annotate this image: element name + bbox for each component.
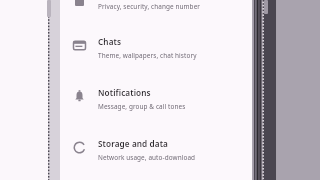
button[interactable]: Chats <box>60 29 252 67</box>
staticText: Theme, wallpapers, chat history <box>98 51 197 60</box>
staticText: Network usage, auto-download <box>98 153 196 162</box>
staticText: Message, group & call tones <box>98 102 186 111</box>
staticText: Notifications <box>98 87 151 98</box>
staticText: Chats <box>98 36 122 47</box>
other: Chats <box>72 38 87 53</box>
staticText: Storage and data <box>98 138 168 149</box>
button[interactable]: Notifications <box>60 80 252 118</box>
button[interactable]: Storage and data <box>60 131 252 169</box>
other: Notifications <box>72 89 87 104</box>
staticText: Privacy, security, change number <box>98 2 201 11</box>
other: Account <box>72 0 87 8</box>
button[interactable]: Account <box>60 0 252 16</box>
other: Storage and data <box>72 140 87 155</box>
